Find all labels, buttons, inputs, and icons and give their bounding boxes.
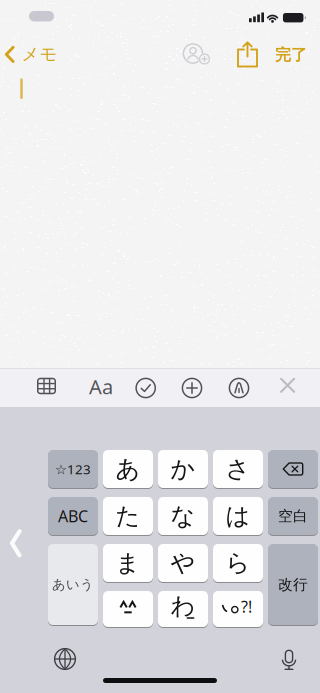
button[interactable]: 完了 bbox=[269, 42, 313, 68]
button[interactable]: 共同作業者を追加 bbox=[182, 42, 210, 66]
button[interactable]: 表 bbox=[31, 371, 61, 401]
staticText: Aa bbox=[89, 373, 113, 400]
button[interactable]: 音声入力 bbox=[281, 648, 297, 670]
staticText: や bbox=[170, 548, 195, 578]
button[interactable]: 閉じる bbox=[280, 377, 296, 393]
button[interactable]: は bbox=[213, 496, 263, 535]
button[interactable]: ?! bbox=[213, 590, 263, 627]
button[interactable]: わ bbox=[158, 590, 208, 627]
staticText: あいう bbox=[52, 576, 94, 593]
staticText: ら bbox=[225, 548, 250, 578]
button[interactable]: あいう bbox=[48, 543, 98, 625]
staticText: わ bbox=[170, 591, 195, 621]
button[interactable]: 共有 bbox=[237, 41, 258, 67]
button[interactable]: キーボードを広げる bbox=[10, 529, 22, 557]
staticText: メモ bbox=[21, 44, 57, 65]
button[interactable]: や bbox=[158, 543, 208, 582]
button[interactable]: ら bbox=[213, 543, 263, 582]
staticText: 改行 bbox=[278, 575, 308, 593]
button[interactable]: 次のキーボード bbox=[53, 647, 76, 670]
staticText: ☆123 bbox=[55, 460, 91, 478]
button[interactable]: な bbox=[158, 496, 208, 535]
staticText: ABC bbox=[58, 505, 88, 527]
button[interactable]: チェックリスト bbox=[135, 377, 157, 399]
staticText: ま bbox=[115, 548, 140, 578]
staticText: あ bbox=[115, 454, 140, 484]
button[interactable]: メモ（戻る） bbox=[4, 44, 57, 65]
staticText: は bbox=[225, 501, 250, 531]
button[interactable]: ABC bbox=[48, 496, 98, 535]
button[interactable] bbox=[103, 590, 153, 627]
button[interactable]: 空白 bbox=[268, 496, 318, 535]
staticText: な bbox=[170, 501, 195, 531]
staticText: さ bbox=[225, 454, 250, 484]
button[interactable]: フォーマット bbox=[84, 371, 118, 401]
button[interactable]: か bbox=[158, 449, 208, 488]
button[interactable]: 追加 bbox=[181, 377, 203, 399]
staticText: か bbox=[170, 454, 195, 484]
button[interactable]: た bbox=[103, 496, 153, 535]
staticText: 完了 bbox=[275, 45, 307, 65]
staticText: た bbox=[115, 501, 140, 531]
staticText: 空白 bbox=[278, 507, 308, 525]
button[interactable] bbox=[268, 449, 318, 488]
staticText: ?! bbox=[241, 596, 252, 617]
button[interactable]: ☆123 bbox=[48, 449, 98, 488]
button[interactable]: ま bbox=[103, 543, 153, 582]
button[interactable]: さ bbox=[213, 449, 263, 488]
button[interactable]: 改行 bbox=[268, 543, 318, 625]
button[interactable]: マークアップ bbox=[228, 377, 250, 399]
button[interactable]: あ bbox=[103, 449, 153, 488]
